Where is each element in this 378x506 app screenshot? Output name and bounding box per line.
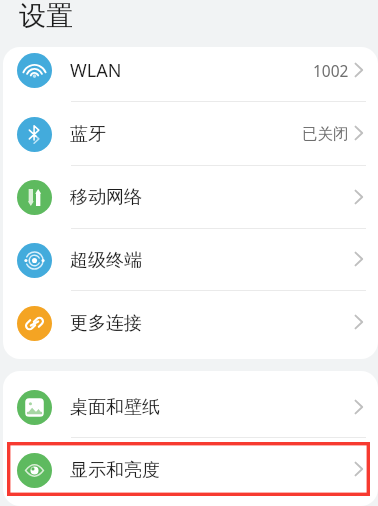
other: Bluetooth [17, 117, 52, 152]
other: Mobile network [17, 180, 52, 215]
other: WLAN [17, 53, 52, 88]
button[interactable]: Super device [3, 229, 378, 291]
button[interactable]: Bluetooth [3, 102, 378, 166]
staticText: 1002 [313, 60, 349, 81]
staticText: WLAN [70, 58, 122, 83]
staticText: 超级终端 [70, 249, 142, 272]
other: More connections [17, 306, 52, 341]
staticText: 桌面和壁纸 [70, 396, 160, 419]
other: Home screen and wallpaper [17, 390, 52, 425]
staticText: 已关闭 [302, 124, 349, 144]
button[interactable]: Display and brightness [3, 438, 378, 506]
staticText: 设置 [19, 0, 73, 33]
button[interactable]: Home screen and wallpaper [3, 371, 378, 438]
staticText: 显示和亮度 [70, 459, 160, 482]
button[interactable]: Mobile network [3, 166, 378, 229]
other: Display and brightness [17, 453, 52, 488]
button[interactable]: WLAN [3, 47, 378, 102]
staticText: 蓝牙 [70, 123, 106, 146]
staticText: 更多连接 [70, 312, 142, 335]
staticText: 移动网络 [70, 186, 142, 209]
button[interactable]: More connections [3, 291, 378, 359]
other: Super device [17, 243, 52, 278]
